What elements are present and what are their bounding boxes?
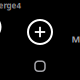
staticText: Mo [71, 33, 80, 45]
button[interactable]: Stop [35, 61, 45, 71]
staticText: erge4 [0, 0, 21, 11]
button[interactable]: Add [28, 20, 52, 44]
